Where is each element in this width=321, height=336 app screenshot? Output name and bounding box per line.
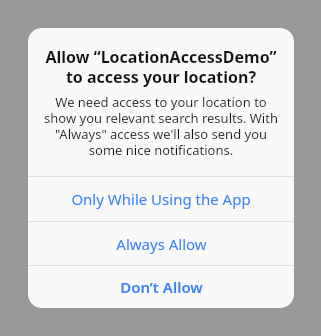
button[interactable]: Always Allow <box>28 222 294 265</box>
staticText: We need access to your location to show … <box>44 93 278 158</box>
other: Location permission dialog <box>28 28 294 308</box>
staticText: Allow “LocationAccessDemo” to access you… <box>45 46 277 87</box>
staticText: Don’t Allow <box>120 277 203 297</box>
button[interactable]: Only While Using the App <box>28 177 294 221</box>
button[interactable]: Don’t Allow <box>28 266 294 308</box>
staticText: Always Allow <box>116 234 207 254</box>
staticText: Only While Using the App <box>71 189 251 209</box>
